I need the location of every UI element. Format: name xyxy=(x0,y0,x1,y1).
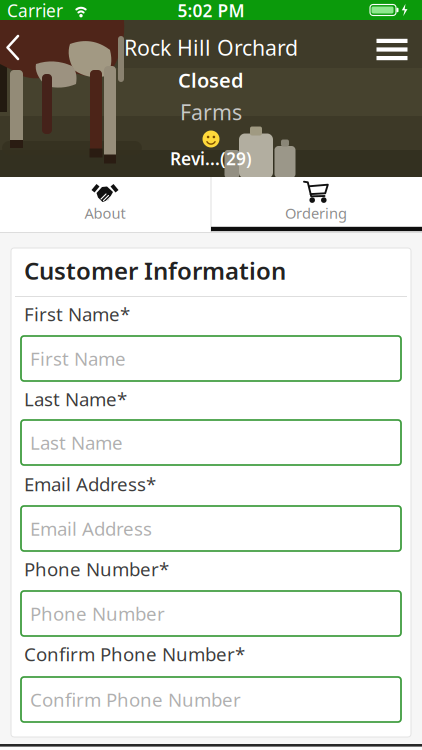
staticText: Phone Number* xyxy=(24,556,169,581)
staticText: Rock Hill Orchard xyxy=(124,33,298,62)
staticText: Last Name xyxy=(30,430,123,455)
staticText: Farms xyxy=(180,98,242,126)
staticText: Email Address* xyxy=(24,471,156,496)
staticText: Email Address xyxy=(30,516,152,541)
button[interactable]: Confirm Phone Number xyxy=(21,677,401,722)
staticText: First Name xyxy=(30,346,126,371)
staticText: Ordering xyxy=(285,203,347,223)
staticText: Phone Number xyxy=(30,601,165,626)
staticText: Confirm Phone Number xyxy=(30,687,241,712)
button[interactable]: Revi...(29) xyxy=(170,147,252,170)
staticText: Revi...(29) xyxy=(170,147,252,170)
button[interactable]: About xyxy=(0,177,210,231)
button[interactable]: Phone Number xyxy=(21,591,401,636)
staticText: Closed xyxy=(178,67,244,93)
button[interactable]: First Name xyxy=(21,336,401,381)
staticText: Confirm Phone Number* xyxy=(24,641,245,666)
button[interactable]: Ordering xyxy=(211,177,421,231)
button[interactable]: Last Name xyxy=(21,420,401,465)
staticText: Carrier xyxy=(7,0,63,22)
button[interactable]: Email Address xyxy=(21,506,401,551)
staticText: 5:02 PM xyxy=(177,0,244,22)
staticText: Customer Information xyxy=(24,254,286,286)
staticText: About xyxy=(84,203,125,223)
button[interactable] xyxy=(376,39,407,60)
button[interactable] xyxy=(3,32,29,63)
staticText: Last Name* xyxy=(24,386,127,411)
staticText: First Name* xyxy=(24,301,130,326)
